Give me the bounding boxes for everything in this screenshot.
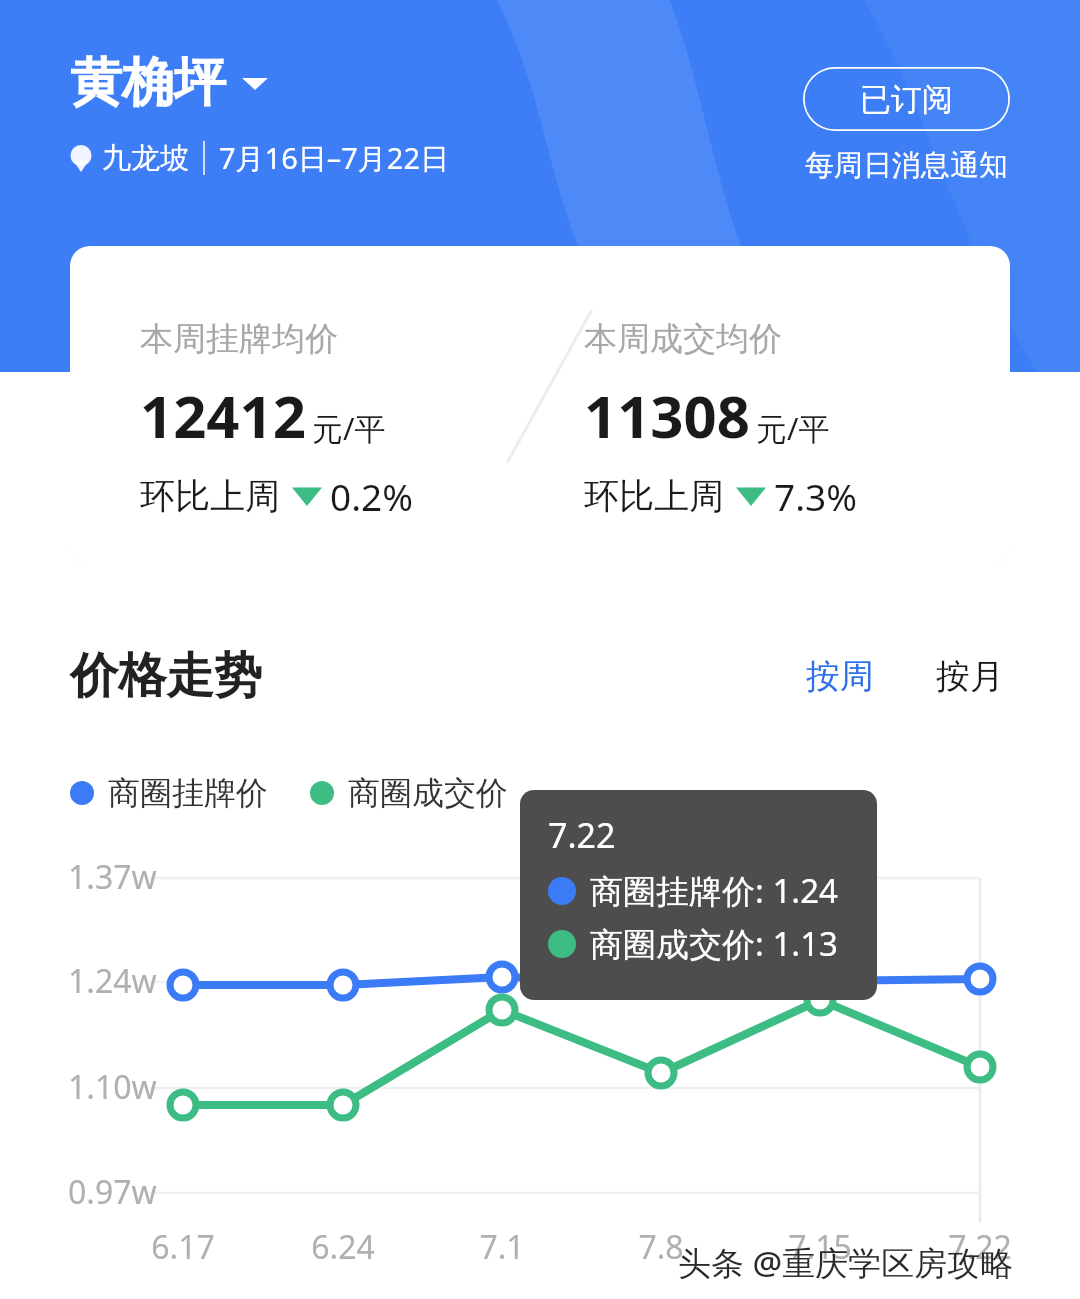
- staticText: 7.3%: [774, 471, 857, 521]
- staticText: 元/平: [312, 407, 386, 449]
- staticText: 已订阅: [860, 80, 953, 119]
- button[interactable]: 7.22: [520, 790, 877, 1000]
- staticText: 6.24: [283, 1225, 403, 1269]
- staticText: 0.2%: [330, 471, 413, 521]
- staticText: 本周挂牌均价: [140, 318, 338, 360]
- button[interactable]: 已订阅: [803, 67, 1010, 131]
- staticText: 商圈挂牌价: 1.24: [590, 868, 838, 913]
- staticText: 九龙坡: [102, 140, 189, 177]
- staticText: 商圈成交价: [348, 773, 508, 813]
- staticText: 按周: [806, 655, 874, 698]
- button[interactable]: 本周挂牌均价: [70, 246, 1010, 565]
- staticText: 7.22: [548, 812, 616, 858]
- staticText: 6.17: [123, 1225, 243, 1269]
- staticText: 元/平: [756, 407, 830, 449]
- staticText: 按月: [936, 655, 1004, 698]
- staticText: 黄桷坪: [70, 50, 226, 116]
- staticText: 7月16日–7月22日: [219, 138, 450, 178]
- staticText: 本周成交均价: [584, 318, 782, 360]
- button[interactable]: 黄桷坪: [70, 50, 268, 116]
- staticText: 头条 @重庆学区房攻略: [678, 1240, 1014, 1285]
- staticText: 0.97w: [68, 1170, 157, 1214]
- staticText: 1.24w: [68, 959, 157, 1003]
- staticText: 1.37w: [68, 855, 157, 899]
- button[interactable]: 按周: [800, 655, 880, 698]
- staticText: 环比上周: [140, 474, 280, 518]
- staticText: 1.10w: [68, 1065, 157, 1109]
- staticText: 环比上周: [584, 474, 724, 518]
- staticText: 7.15: [760, 1225, 880, 1269]
- staticText: 11308: [584, 376, 750, 455]
- staticText: 12412: [140, 376, 306, 455]
- staticText: 价格走势: [70, 646, 262, 706]
- staticText: 商圈挂牌价: [108, 773, 268, 813]
- staticText: 商圈成交价: 1.13: [590, 921, 838, 966]
- button[interactable]: 按月: [930, 655, 1010, 698]
- staticText: 7.8: [601, 1225, 721, 1269]
- staticText: 7.22: [920, 1225, 1040, 1269]
- staticText: 7.1: [442, 1225, 562, 1269]
- staticText: 每周日消息通知: [805, 147, 1008, 184]
